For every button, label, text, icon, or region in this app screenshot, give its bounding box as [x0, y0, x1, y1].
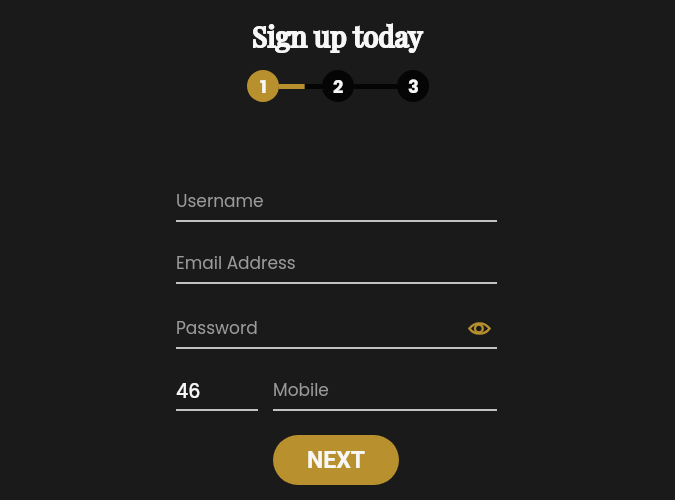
button[interactable]: 3 [397, 70, 429, 102]
button[interactable]: Mobile [273, 378, 497, 411]
staticText: NEXT [307, 447, 366, 474]
staticText: Sign up today [0, 17, 675, 54]
button[interactable]: 46 [176, 375, 258, 411]
button[interactable]: 1 [247, 70, 279, 102]
staticText: 2 [333, 74, 344, 99]
staticText: Password [176, 316, 258, 340]
button[interactable]: Email Address [176, 251, 497, 284]
staticText: Mobile [273, 378, 329, 402]
staticText: 46 [176, 378, 201, 405]
button[interactable]: Show password [465, 318, 493, 338]
staticText: Username [176, 189, 264, 213]
staticText: Sign up today [0, 17, 675, 54]
button[interactable]: Username [176, 189, 497, 222]
staticText: 3 [408, 74, 419, 99]
button[interactable]: 2 [322, 70, 354, 102]
staticText: 1 [260, 74, 267, 99]
button[interactable]: NEXT [273, 435, 399, 485]
button[interactable]: Password [176, 316, 497, 349]
staticText: Email Address [176, 251, 296, 275]
